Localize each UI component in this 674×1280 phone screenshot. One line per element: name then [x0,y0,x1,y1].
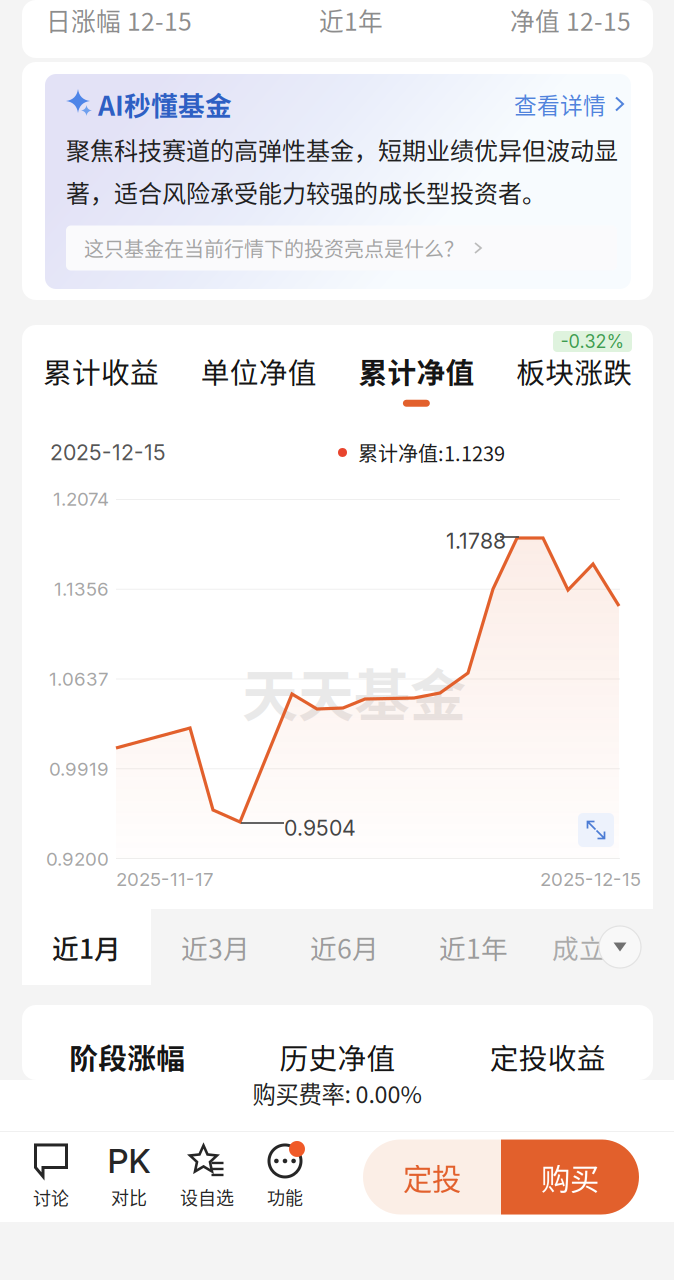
staticText: 近1年 [319,2,383,38]
staticText: AI秒懂基金 [98,85,232,123]
staticText: 天天基金 [242,651,466,732]
button[interactable]: 单位净值 [180,319,338,415]
staticText: 0.9919 [49,758,109,780]
button[interactable]: 购买 [501,1139,639,1214]
staticText: 累计净值 [358,350,474,392]
staticText: 1.0637 [49,668,109,690]
staticText: 著，适合风险承受能力较强的成长型投资者。 [66,175,546,210]
button[interactable]: 累计收益 [22,319,180,415]
button[interactable]: 设自选 [168,1144,246,1210]
staticText: PK [107,1141,150,1181]
staticText: 1.1788 [446,528,506,554]
staticText: 设自选 [180,1184,234,1210]
staticText: 净值 12-15 [510,2,631,38]
button[interactable]: 定投收益 [443,1005,653,1100]
staticText: 累计净值:1.1239 [358,438,505,467]
staticText: 对比 [111,1184,147,1210]
staticText: 近6月 [310,928,379,966]
staticText: 2025-11-17 [116,868,214,891]
staticText: 讨论 [33,1184,69,1211]
button[interactable]: 近1月 [22,909,151,985]
staticText: 这只基金在当前行情下的投资亮点是什么？ [84,233,464,262]
button[interactable]: Expand chart [578,813,614,847]
button[interactable]: 查看详情 [514,88,625,120]
button[interactable]: 近3月 [151,909,280,985]
staticText: 1.2074 [53,488,109,510]
staticText: 2025-12-15 [50,440,166,465]
button[interactable]: 近1年 [409,909,538,985]
button[interactable]: 定投 [363,1139,501,1214]
staticText: 近1年 [439,928,508,966]
staticText: 1.1356 [54,578,109,600]
button[interactable]: 累计净值 [337,319,495,415]
staticText: 0.9504 [284,815,356,841]
button[interactable]: 这只基金在当前行情下的投资亮点是什么？ [66,225,617,270]
button[interactable]: 历史净值 [232,1005,443,1100]
staticText: 购买费率: 0.00% [252,1076,421,1110]
button[interactable]: PK [90,1144,168,1210]
staticText: 近1月 [52,928,121,966]
staticText: 查看详情 [514,88,606,120]
button[interactable]: 板块涨跌 [495,319,653,415]
button[interactable]: 讨论 [12,1143,90,1211]
staticText: 单位净值 [201,350,317,392]
staticText: 累计收益 [43,350,159,392]
staticText: 日涨幅 12-15 [46,2,192,38]
staticText: 历史净值 [279,1036,395,1077]
staticText: 定投收益 [490,1036,606,1077]
staticText: 聚焦科技赛道的高弹性基金，短期业绩优异但波动显 [66,132,618,167]
staticText: 购买 [541,1156,599,1198]
staticText: 阶段涨幅 [69,1036,185,1077]
staticText: 功能 [267,1184,303,1210]
staticText: 定投 [403,1156,461,1198]
staticText: 近3月 [181,928,250,966]
staticText: 板块涨跌 [516,350,632,392]
button[interactable]: 阶段涨幅 [22,1005,232,1100]
staticText: 2025-12-15 [540,868,641,891]
button[interactable]: 功能 [246,1144,324,1210]
staticText: 0.9200 [46,848,109,870]
staticText: -0.32% [560,331,624,352]
button[interactable]: 近6月 [280,909,409,985]
button[interactable]: More ranges [598,925,642,969]
staticText: 成立 [552,928,606,966]
